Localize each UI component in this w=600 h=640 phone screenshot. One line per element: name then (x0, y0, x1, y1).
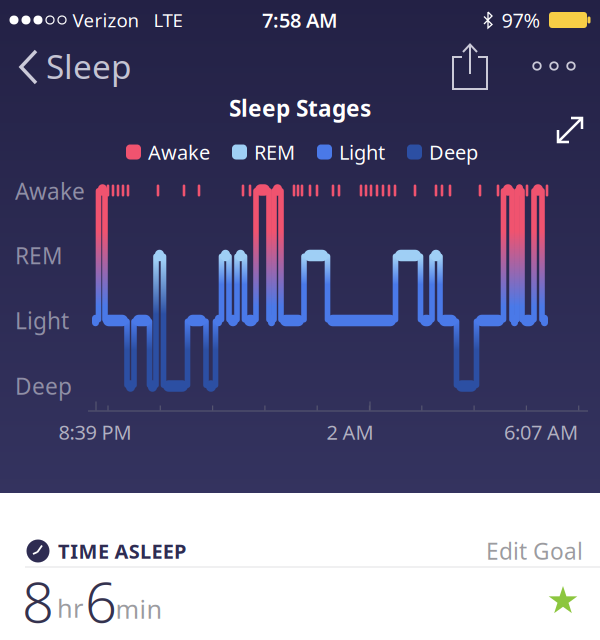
staticText: 2 AM (326, 419, 373, 445)
staticText: REM (254, 139, 295, 165)
staticText: Verizon (72, 8, 139, 32)
staticText: hr (57, 591, 83, 625)
staticText: Deep (429, 139, 478, 165)
staticText: TIME ASLEEP (58, 538, 186, 564)
staticText: Light (339, 139, 385, 165)
staticText: Awake (148, 139, 210, 165)
staticText: 6:07 AM (504, 419, 578, 445)
staticText: Awake (15, 176, 85, 206)
staticText: 7:58 AM (262, 7, 338, 33)
staticText: min (115, 592, 162, 626)
staticText: 8 (22, 564, 54, 638)
staticText: Sleep Stages (229, 93, 371, 123)
staticText: Edit Goal (486, 536, 583, 566)
staticText: 97% (501, 7, 540, 33)
staticText: 6 (85, 564, 117, 638)
staticText: REM (15, 240, 63, 270)
staticText: Sleep (46, 44, 132, 88)
staticText: 8:39 PM (58, 419, 131, 445)
staticText: LTE (153, 8, 182, 32)
staticText: Light (15, 305, 69, 335)
staticText: Deep (15, 371, 72, 401)
